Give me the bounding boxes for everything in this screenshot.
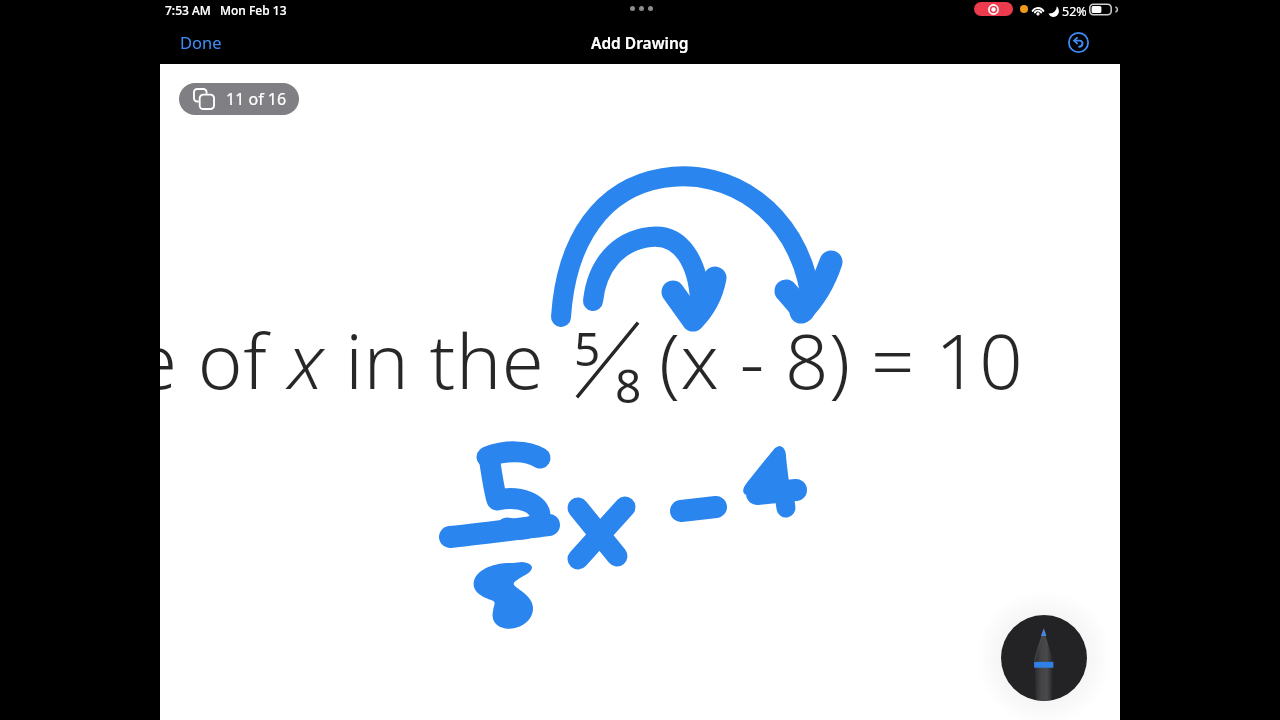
staticText: Add Drawing — [591, 32, 689, 53]
staticText: 5 — [574, 317, 601, 380]
staticText: 52% — [1062, 3, 1087, 20]
button[interactable]: Pen tool — [1001, 615, 1087, 701]
staticText: x — [288, 308, 325, 412]
button[interactable]: Undo — [1058, 22, 1098, 62]
button[interactable]: 11 of 16 — [179, 83, 299, 115]
staticText: Mon Feb 13 — [220, 2, 287, 18]
staticText: e of — [160, 308, 288, 412]
button[interactable]: Done — [162, 25, 240, 59]
staticText: Done — [180, 31, 222, 53]
staticText: (x - 8) = 10 — [659, 308, 1024, 412]
staticText: 7:53 AM — [165, 2, 211, 18]
staticText: 11 of 16 — [226, 88, 287, 110]
staticText: in the — [325, 308, 565, 412]
staticText: 8 — [615, 354, 642, 417]
